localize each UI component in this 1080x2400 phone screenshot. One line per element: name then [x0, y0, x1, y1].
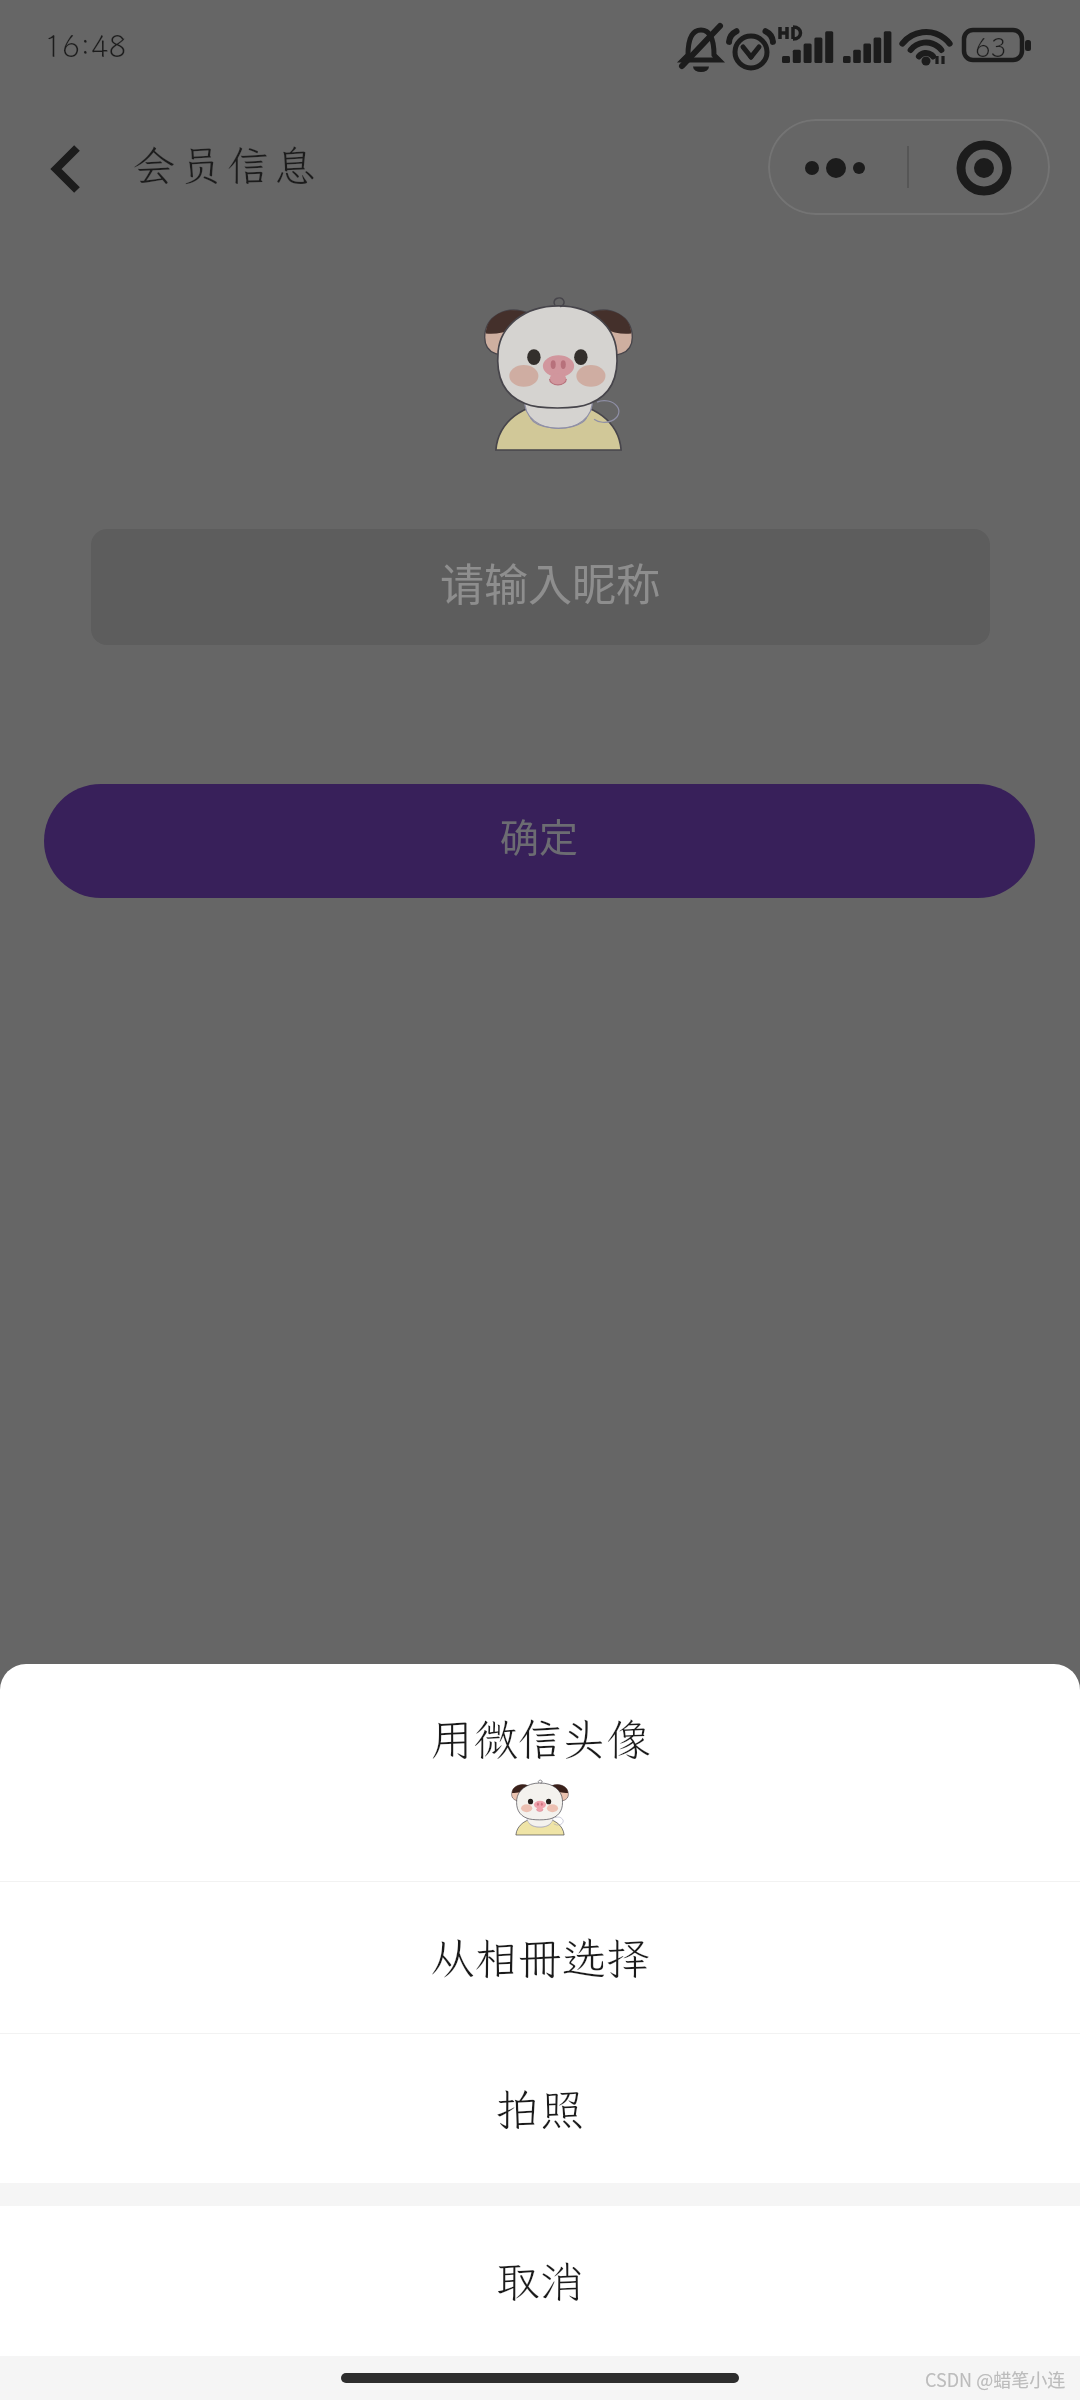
staticText: CSDN @蜡笔小连 [925, 2366, 1066, 2392]
staticText: 取消 [496, 2252, 584, 2310]
button[interactable]: Change avatar [478, 292, 639, 450]
button[interactable]: 从相册选择 [0, 1882, 1080, 2033]
button[interactable]: Back [20, 121, 106, 207]
staticText: 确定 [500, 807, 579, 863]
staticText: 拍照 [496, 2080, 584, 2138]
staticText: 会员信息 [133, 138, 322, 193]
button[interactable]: 取消 [0, 2206, 1080, 2356]
staticText: 请输入昵称 [440, 550, 660, 614]
button[interactable]: More options [768, 119, 908, 215]
button[interactable]: 用微信头像 [0, 1664, 1080, 1881]
button[interactable]: 请输入昵称 [91, 529, 990, 645]
staticText: 16:48 [44, 26, 127, 66]
button[interactable]: Close mini program [910, 119, 1050, 215]
staticText: 从相册选择 [430, 1929, 650, 1987]
staticText: 63 [975, 30, 1007, 64]
button[interactable]: 确定 [44, 784, 1035, 898]
staticText: 用微信头像 [430, 1710, 650, 1768]
button[interactable]: 拍照 [0, 2034, 1080, 2183]
